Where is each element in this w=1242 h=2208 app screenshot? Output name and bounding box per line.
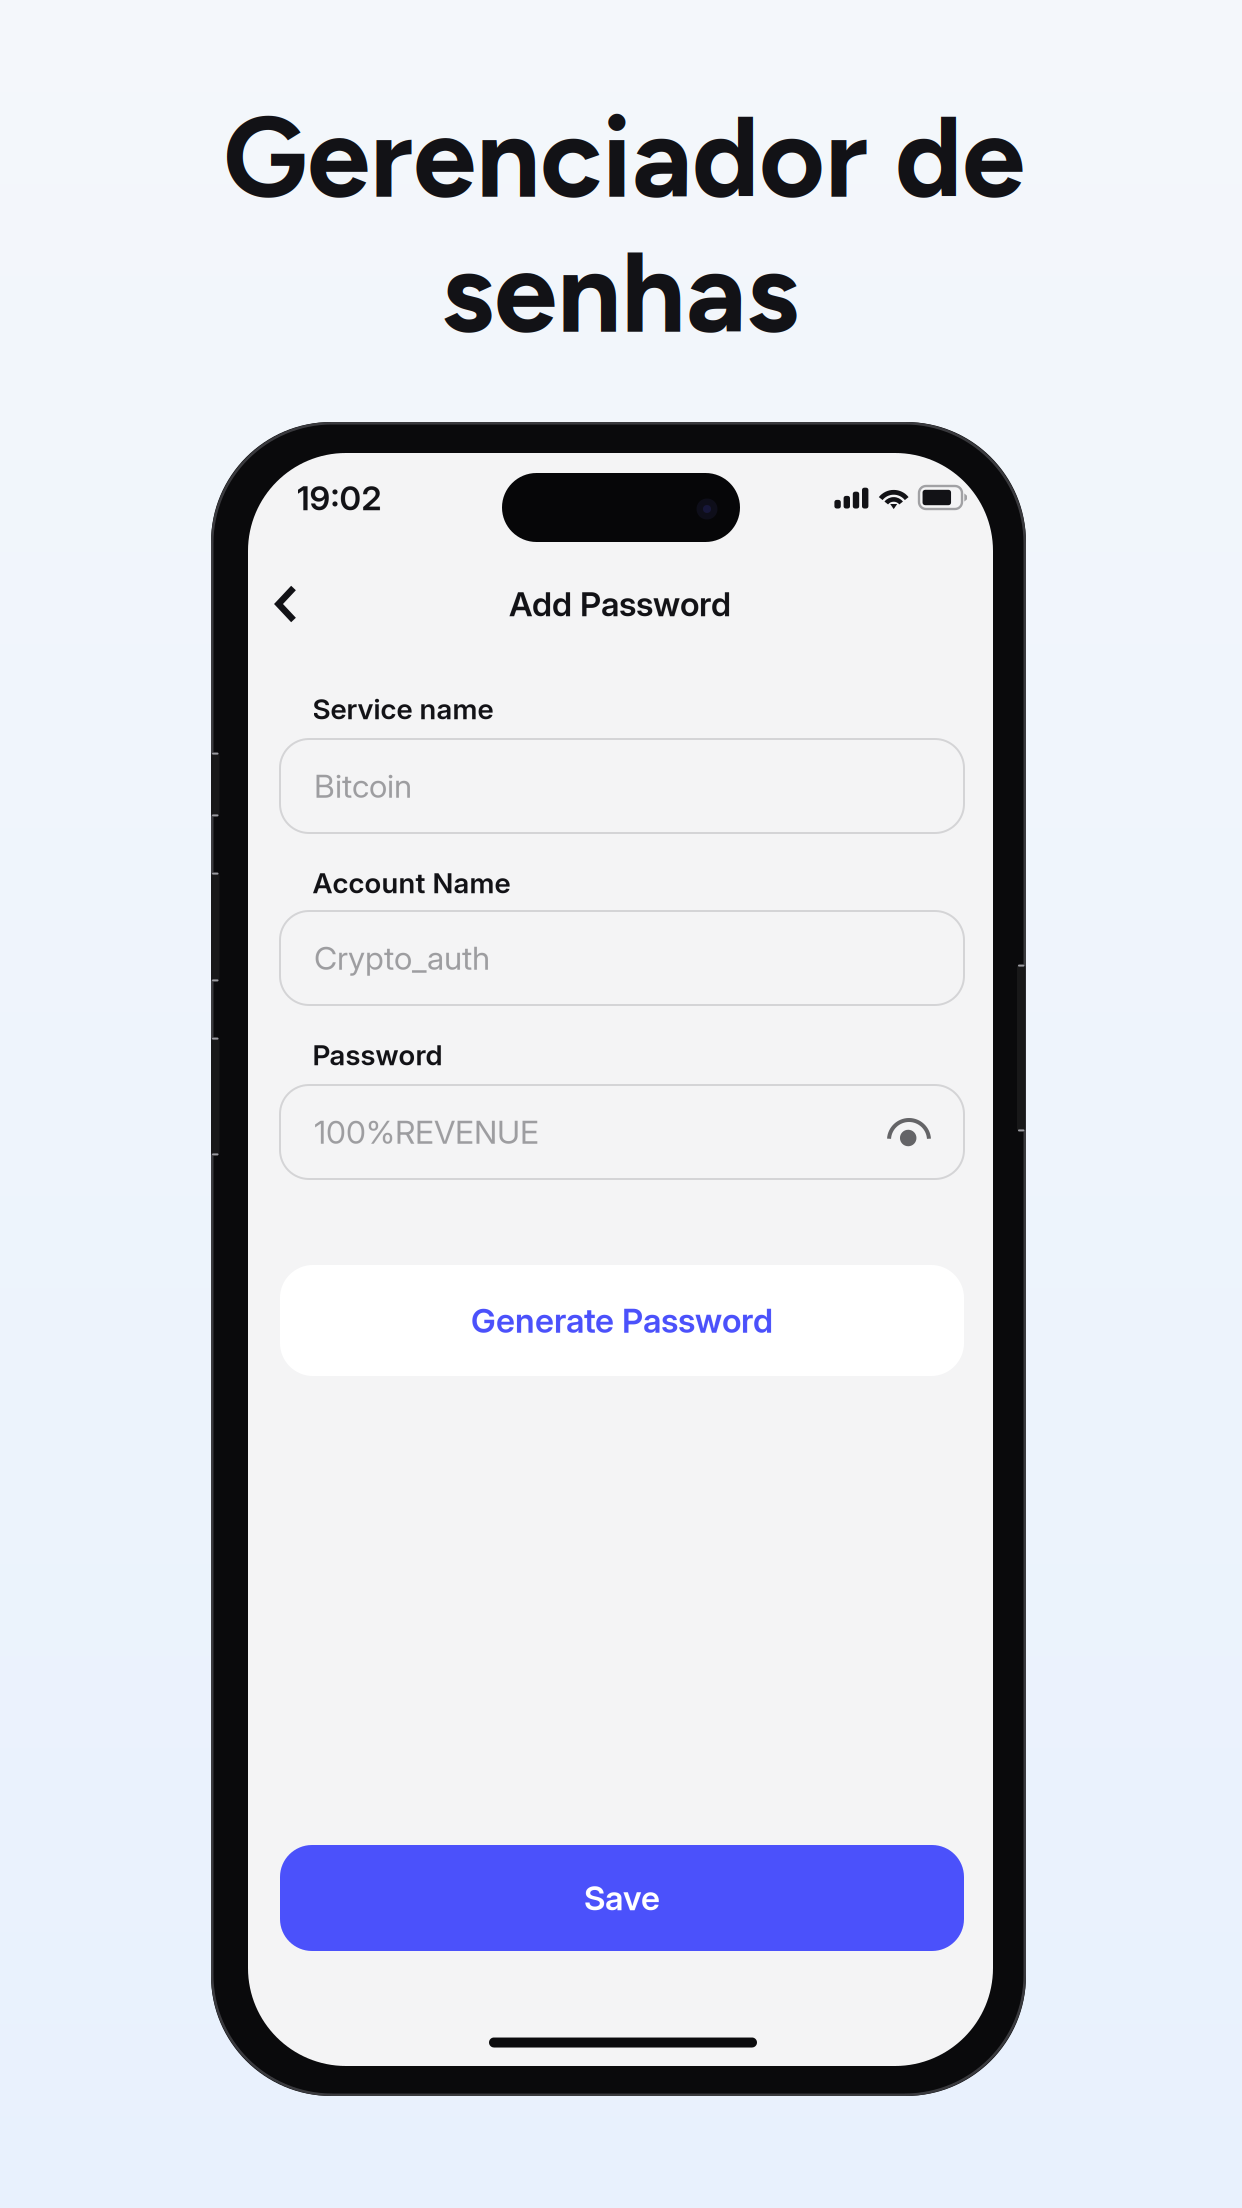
- staticText: senhas: [441, 224, 799, 360]
- staticText: Bitcoin: [314, 767, 412, 805]
- staticText: Gerenciador de: [223, 89, 1025, 225]
- staticText: Account Name: [312, 866, 510, 900]
- button[interactable]: Back: [247, 565, 325, 643]
- staticText: Password: [312, 1038, 442, 1072]
- staticText: Save: [584, 1878, 660, 1918]
- staticText: 19:02: [296, 478, 381, 518]
- button[interactable]: Generate Password: [280, 1265, 964, 1376]
- staticText: Service name: [312, 692, 493, 726]
- staticText: Add Password: [509, 584, 731, 624]
- staticText: 100%REVENUE: [314, 1113, 539, 1151]
- staticText: Crypto_auth: [314, 939, 490, 977]
- button[interactable]: Save: [280, 1845, 964, 1951]
- staticText: Generate Password: [471, 1300, 773, 1341]
